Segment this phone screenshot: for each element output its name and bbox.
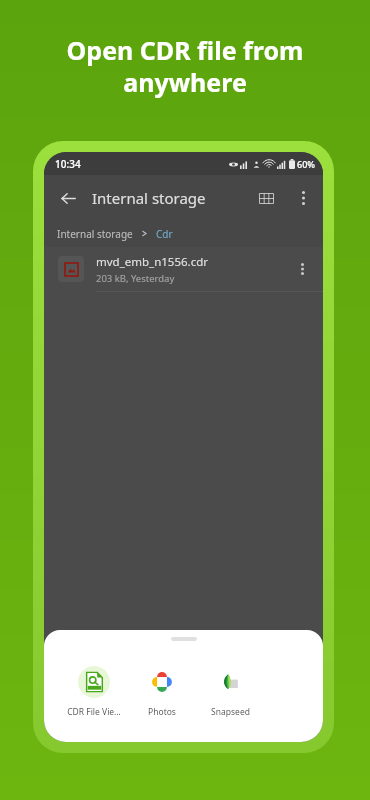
button[interactable]: Internal storage	[57, 227, 133, 241]
button[interactable]: Photos	[128, 666, 196, 718]
button[interactable]: Back	[50, 180, 86, 216]
staticText: mvd_emb_n1556.cdr	[96, 254, 209, 270]
button[interactable]: mvd_emb_n1556.cdr	[44, 247, 323, 291]
button[interactable]: Cdr	[156, 227, 173, 241]
staticText: 203 kB, Yesterday	[96, 272, 175, 285]
staticText: 10:34	[55, 157, 81, 171]
staticText: CDR File Vie…	[67, 706, 121, 718]
staticText: Internal storage	[92, 188, 206, 208]
button[interactable]: Snapseed	[196, 666, 264, 718]
staticText: Snapseed	[211, 706, 250, 718]
button[interactable]: File options	[285, 252, 319, 286]
button[interactable]: Grid view	[247, 179, 285, 217]
staticText: 60%	[297, 158, 315, 170]
button[interactable]: CDR File Vie…	[60, 666, 128, 718]
button[interactable]: More options	[285, 180, 321, 216]
staticText: Open CDR file from anywhere	[22, 33, 348, 99]
staticText: Photos	[148, 706, 176, 718]
